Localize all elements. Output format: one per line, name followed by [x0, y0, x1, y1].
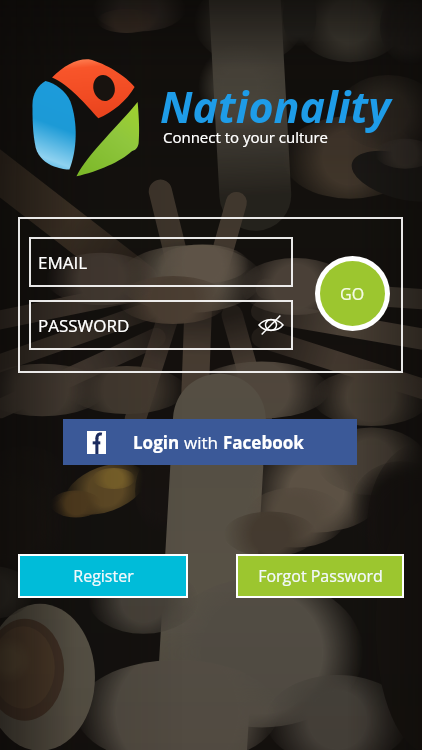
staticText: Forgot Password [258, 565, 383, 587]
button[interactable]: Register [18, 554, 188, 598]
button[interactable]: EMAIL [29, 237, 293, 287]
staticText: with [184, 431, 223, 454]
staticText: EMAIL [38, 251, 88, 274]
staticText: Login [133, 431, 184, 454]
button[interactable]: Show password [259, 314, 283, 336]
button[interactable]: Forgot Password [236, 554, 404, 598]
staticText: Facebook [223, 431, 304, 454]
staticText: PASSWORD [38, 314, 130, 337]
staticText: GO [340, 283, 365, 305]
staticText: Register [73, 565, 134, 587]
staticText: Nationality [160, 77, 391, 136]
staticText: Connect to your culture [163, 127, 329, 147]
button[interactable]: Login [63, 419, 357, 465]
button[interactable]: GO [320, 261, 385, 326]
button[interactable]: PASSWORD [29, 300, 293, 350]
